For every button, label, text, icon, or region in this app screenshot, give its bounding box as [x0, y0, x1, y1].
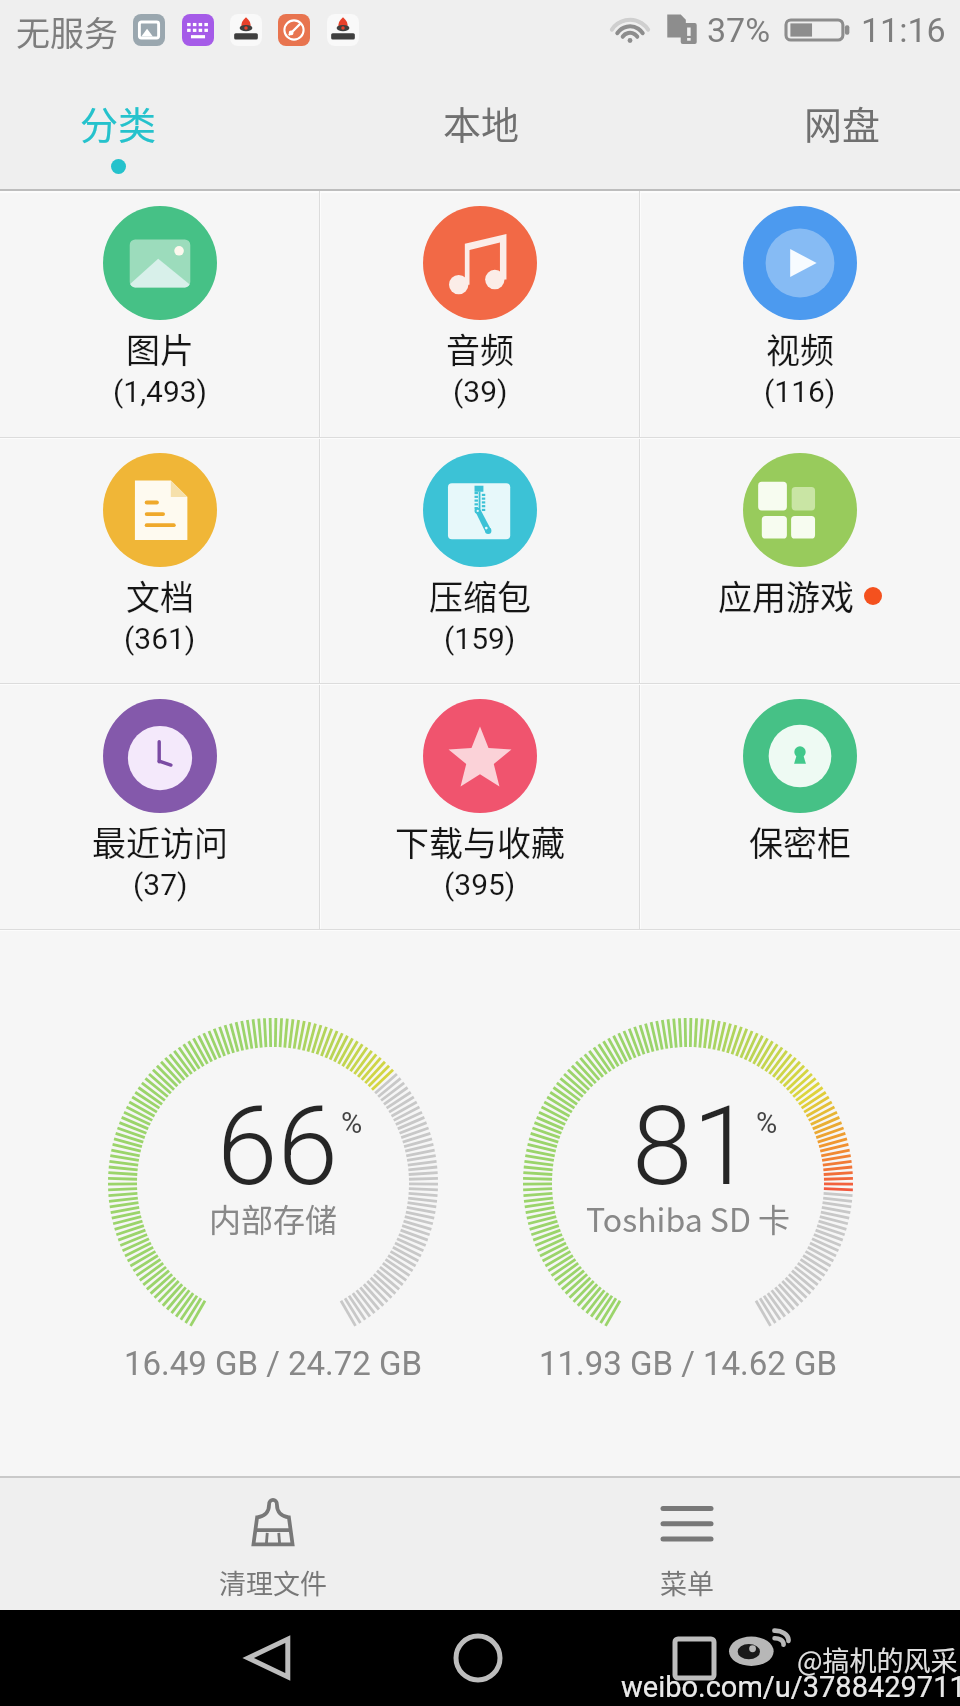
staticText: 66: [217, 1083, 338, 1211]
button[interactable]: 压缩包: [320, 438, 640, 684]
staticText: 保密柜: [749, 817, 851, 866]
staticText: %: [756, 1106, 778, 1140]
staticText: 音频: [446, 324, 514, 373]
button[interactable]: 81: [523, 1018, 853, 1348]
staticText: (116): [764, 374, 836, 409]
button[interactable]: 音频: [320, 191, 640, 437]
staticText: (395): [444, 867, 516, 902]
staticText: (37): [133, 867, 188, 902]
staticText: 下载与收藏: [395, 817, 565, 866]
button[interactable]: 菜单: [567, 1478, 807, 1610]
button[interactable]: 分类: [28, 76, 208, 190]
staticText: 应用游戏: [718, 571, 854, 620]
staticText: 16.49 GB / 24.72 GB: [73, 1344, 473, 1383]
button[interactable]: Recents: [649, 1610, 739, 1706]
button[interactable]: 下载与收藏: [320, 684, 640, 930]
button[interactable]: 网盘: [752, 76, 932, 190]
staticText: (159): [444, 621, 516, 656]
staticText: 分类: [80, 95, 157, 150]
staticText: @搞机的风采: [797, 1640, 958, 1679]
staticText: 最近访问: [92, 817, 228, 866]
staticText: 文档: [126, 571, 194, 620]
staticText: 压缩包: [429, 571, 531, 620]
button[interactable]: Back: [223, 1610, 313, 1706]
button[interactable]: 本地: [391, 76, 571, 190]
button[interactable]: 保密柜: [640, 684, 960, 930]
staticText: %: [341, 1106, 363, 1140]
staticText: 图片: [126, 324, 194, 373]
button[interactable]: 文档: [0, 438, 320, 684]
button[interactable]: 应用游戏: [640, 438, 960, 684]
button[interactable]: 图片: [0, 191, 320, 437]
button[interactable]: Home: [433, 1610, 523, 1706]
staticText: (39): [453, 374, 508, 409]
staticText: 内部存储: [209, 1195, 338, 1241]
staticText: 无服务: [16, 7, 118, 56]
staticText: 37%: [707, 10, 771, 50]
staticText: 网盘: [804, 95, 881, 150]
staticText: Toshiba SD 卡: [586, 1195, 791, 1241]
button[interactable]: 视频: [640, 191, 960, 437]
staticText: weibo.com/u/3788429711: [621, 1670, 960, 1704]
staticText: 11:16: [861, 10, 946, 50]
staticText: 11.93 GB / 14.62 GB: [488, 1344, 888, 1383]
staticText: (1,493): [113, 374, 208, 409]
staticText: (361): [124, 621, 196, 656]
button[interactable]: 最近访问: [0, 684, 320, 930]
button[interactable]: 清理文件: [153, 1478, 393, 1610]
staticText: 81: [632, 1083, 753, 1211]
button[interactable]: 66: [108, 1018, 438, 1348]
staticText: 本地: [443, 95, 520, 150]
staticText: 视频: [766, 324, 834, 373]
staticText: 清理文件: [219, 1563, 327, 1602]
staticText: 菜单: [660, 1563, 714, 1602]
